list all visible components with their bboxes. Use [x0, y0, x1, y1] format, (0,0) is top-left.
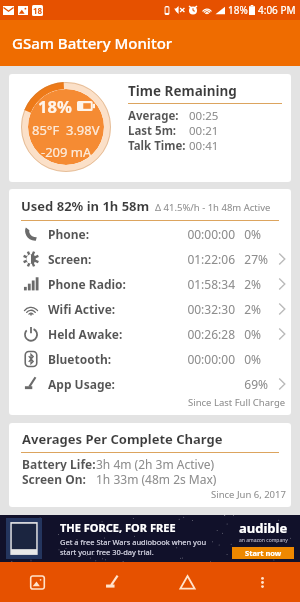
staticText: Since Jun 6, 2017 — [211, 488, 286, 501]
staticText: Screen On: — [22, 471, 86, 486]
staticText: an amazon company — [239, 537, 288, 544]
staticText: 18 — [33, 5, 43, 16]
staticText: 18% — [38, 95, 72, 117]
staticText: 0% — [244, 226, 261, 242]
staticText: 69% — [244, 376, 268, 392]
button[interactable]: Phone Radio: — [9, 271, 291, 296]
button[interactable]: More options — [225, 562, 300, 602]
staticText: 00:32:30 — [187, 301, 235, 317]
staticText: 1h 33m (48m 2s Max) — [96, 471, 217, 486]
staticText: 2% — [244, 276, 261, 292]
staticText: 4:06 PM — [258, 3, 296, 17]
staticText: Used 82% in 1h 58m — [21, 197, 150, 215]
staticText: Start now — [245, 548, 282, 558]
staticText: 01:58:34 — [187, 276, 235, 292]
staticText: 18% — [228, 3, 248, 17]
staticText: 3h 4m (2h 3m Active) — [96, 456, 215, 471]
staticText: Battery Life: — [22, 456, 96, 471]
staticText: Time Remaining — [128, 82, 237, 100]
staticText: Since Last Full Charge — [188, 396, 286, 409]
staticText: -209 mA — [41, 143, 92, 161]
button[interactable]: Wifi Active: — [9, 296, 291, 321]
staticText: 00:26:28 — [187, 326, 235, 342]
staticText: 00:41 — [189, 138, 219, 153]
staticText: 00:00:00 — [187, 351, 235, 367]
staticText: 2% — [244, 301, 261, 317]
staticText: App Usage: — [48, 376, 115, 392]
staticText: Wifi Active: — [48, 301, 116, 317]
staticText: Bluetooth: — [48, 351, 112, 367]
button[interactable]: THE FORCE, FOR — [0, 515, 300, 562]
staticText: Phone Radio: — [48, 276, 126, 292]
staticText: Phone: — [48, 226, 90, 242]
button[interactable]: Charts — [0, 562, 75, 602]
staticText: 0% — [244, 326, 261, 342]
button[interactable]: Phone: — [9, 221, 291, 246]
staticText: 27% — [244, 251, 268, 267]
button[interactable]: Screen: — [9, 246, 291, 271]
staticText: Screen: — [48, 251, 92, 267]
staticText: 00:21 — [189, 123, 219, 138]
staticText: Average: — [128, 108, 179, 123]
staticText: Talk Time: — [128, 138, 186, 153]
button[interactable]: Bluetooth: — [9, 346, 291, 371]
staticText: 00:25 — [189, 108, 219, 123]
staticText: audible — [239, 519, 288, 537]
button[interactable]: App Usage — [75, 562, 150, 602]
staticText: Averages Per Complete Charge — [22, 430, 223, 448]
staticText: FREE — [150, 520, 176, 535]
staticText: start your free 30-day trial. — [60, 547, 154, 557]
staticText: 00:00:00 — [187, 226, 235, 242]
staticText: 85°F 3.98V — [32, 121, 100, 139]
staticText: Get a free Star Wars audiobook when you — [60, 537, 207, 547]
button[interactable]: Held Awake: — [9, 321, 291, 346]
button[interactable]: App Usage: — [9, 371, 291, 396]
staticText: Held Awake: — [48, 326, 123, 342]
staticText: Last 5m: — [128, 123, 177, 138]
button[interactable]: Statistics — [150, 562, 225, 602]
staticText: Δ 41.5%/h - 1h 48m Active — [155, 201, 271, 214]
staticText: 01:22:06 — [187, 251, 235, 267]
staticText: 0% — [244, 351, 261, 367]
staticText: THE FORCE, FOR — [60, 520, 150, 535]
staticText: GSam Battery Monitor — [12, 33, 173, 53]
